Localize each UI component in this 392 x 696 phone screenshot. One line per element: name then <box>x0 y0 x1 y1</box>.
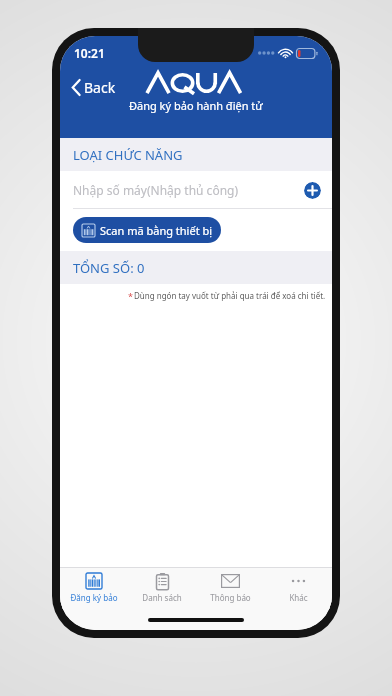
staticText: * <box>128 290 133 302</box>
staticText: Thông báo <box>210 592 251 603</box>
staticText: Dùng ngón tay vuốt từ phải qua trái để x… <box>134 290 326 301</box>
staticText: 10:21 <box>74 45 105 61</box>
staticText: TỔNG SỐ: 0 <box>73 259 145 277</box>
button[interactable]: Khác <box>264 568 332 610</box>
button[interactable]: Back <box>66 74 122 101</box>
staticText: Khác <box>289 592 308 603</box>
staticText: Back <box>84 78 116 97</box>
button[interactable]: Nhập số máy(Nhập thủ công) <box>73 182 296 198</box>
staticText: Scan mã bằng thiết bị <box>100 223 213 238</box>
button[interactable]: Thông báo <box>196 568 264 610</box>
button[interactable]: Scan mã bằng thiết bị <box>73 217 221 243</box>
button[interactable]: Thêm <box>304 182 321 199</box>
staticText: Đăng ký bảo hành điện tử <box>129 98 263 113</box>
button[interactable]: Đăng ký bảo hành <box>60 568 128 610</box>
staticText: Nhập số máy(Nhập thủ công) <box>73 182 239 198</box>
button[interactable]: Danh sách <box>128 568 196 610</box>
staticText: Đăng ký bảo hành <box>60 592 128 603</box>
staticText: LOẠI CHỨC NĂNG <box>73 146 183 164</box>
staticText: Danh sách <box>142 592 182 603</box>
